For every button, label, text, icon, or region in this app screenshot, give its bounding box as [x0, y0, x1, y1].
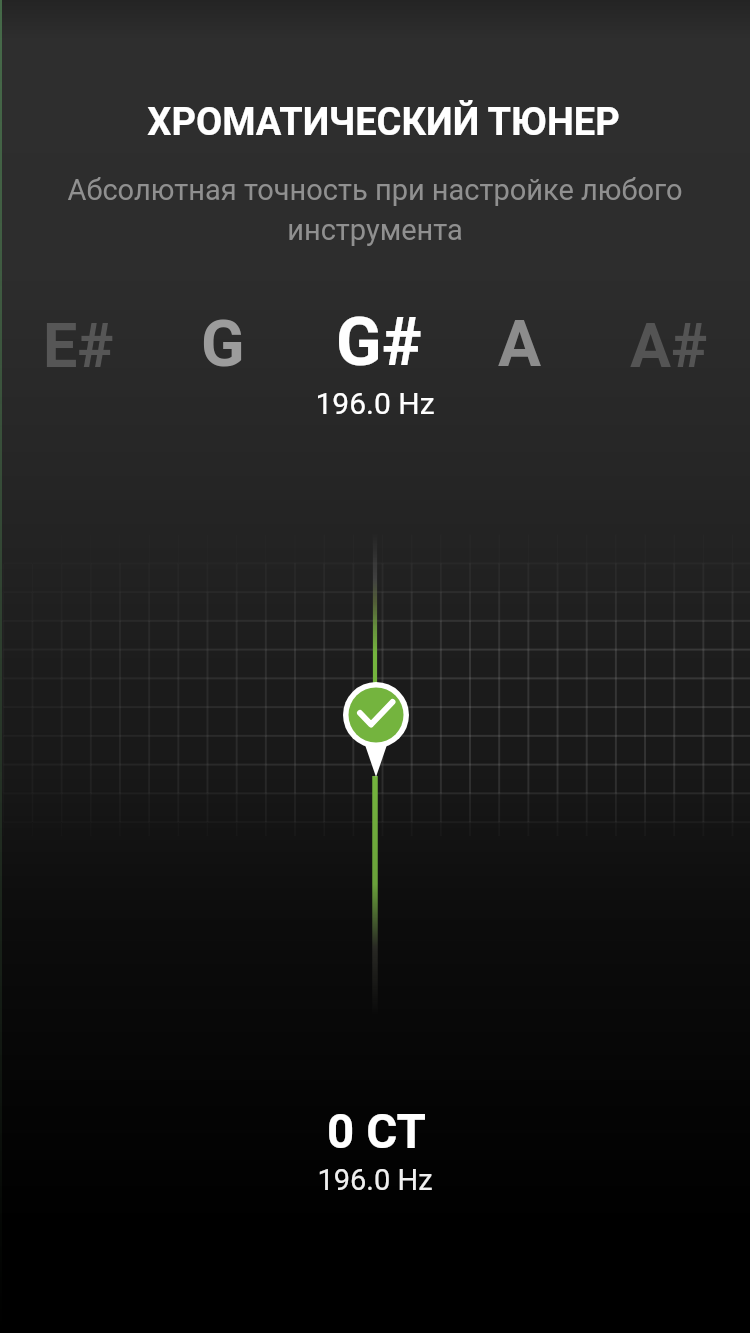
button[interactable]: A — [498, 307, 542, 382]
staticText: инструмента — [287, 213, 463, 247]
button[interactable]: E# — [43, 310, 114, 381]
staticText: 196.0 Hz — [315, 386, 435, 421]
staticText: 0 CT — [327, 1104, 426, 1160]
button[interactable]: G — [201, 307, 245, 382]
button[interactable]: G# — [336, 303, 422, 382]
staticText: 196.0 Hz — [317, 1163, 433, 1197]
button[interactable]: A# — [630, 310, 708, 381]
staticText: ХРОМАТИЧЕСКИЙ ТЮНЕР — [147, 100, 620, 145]
staticText: Абсолютная точность при настройке любого — [67, 173, 683, 207]
